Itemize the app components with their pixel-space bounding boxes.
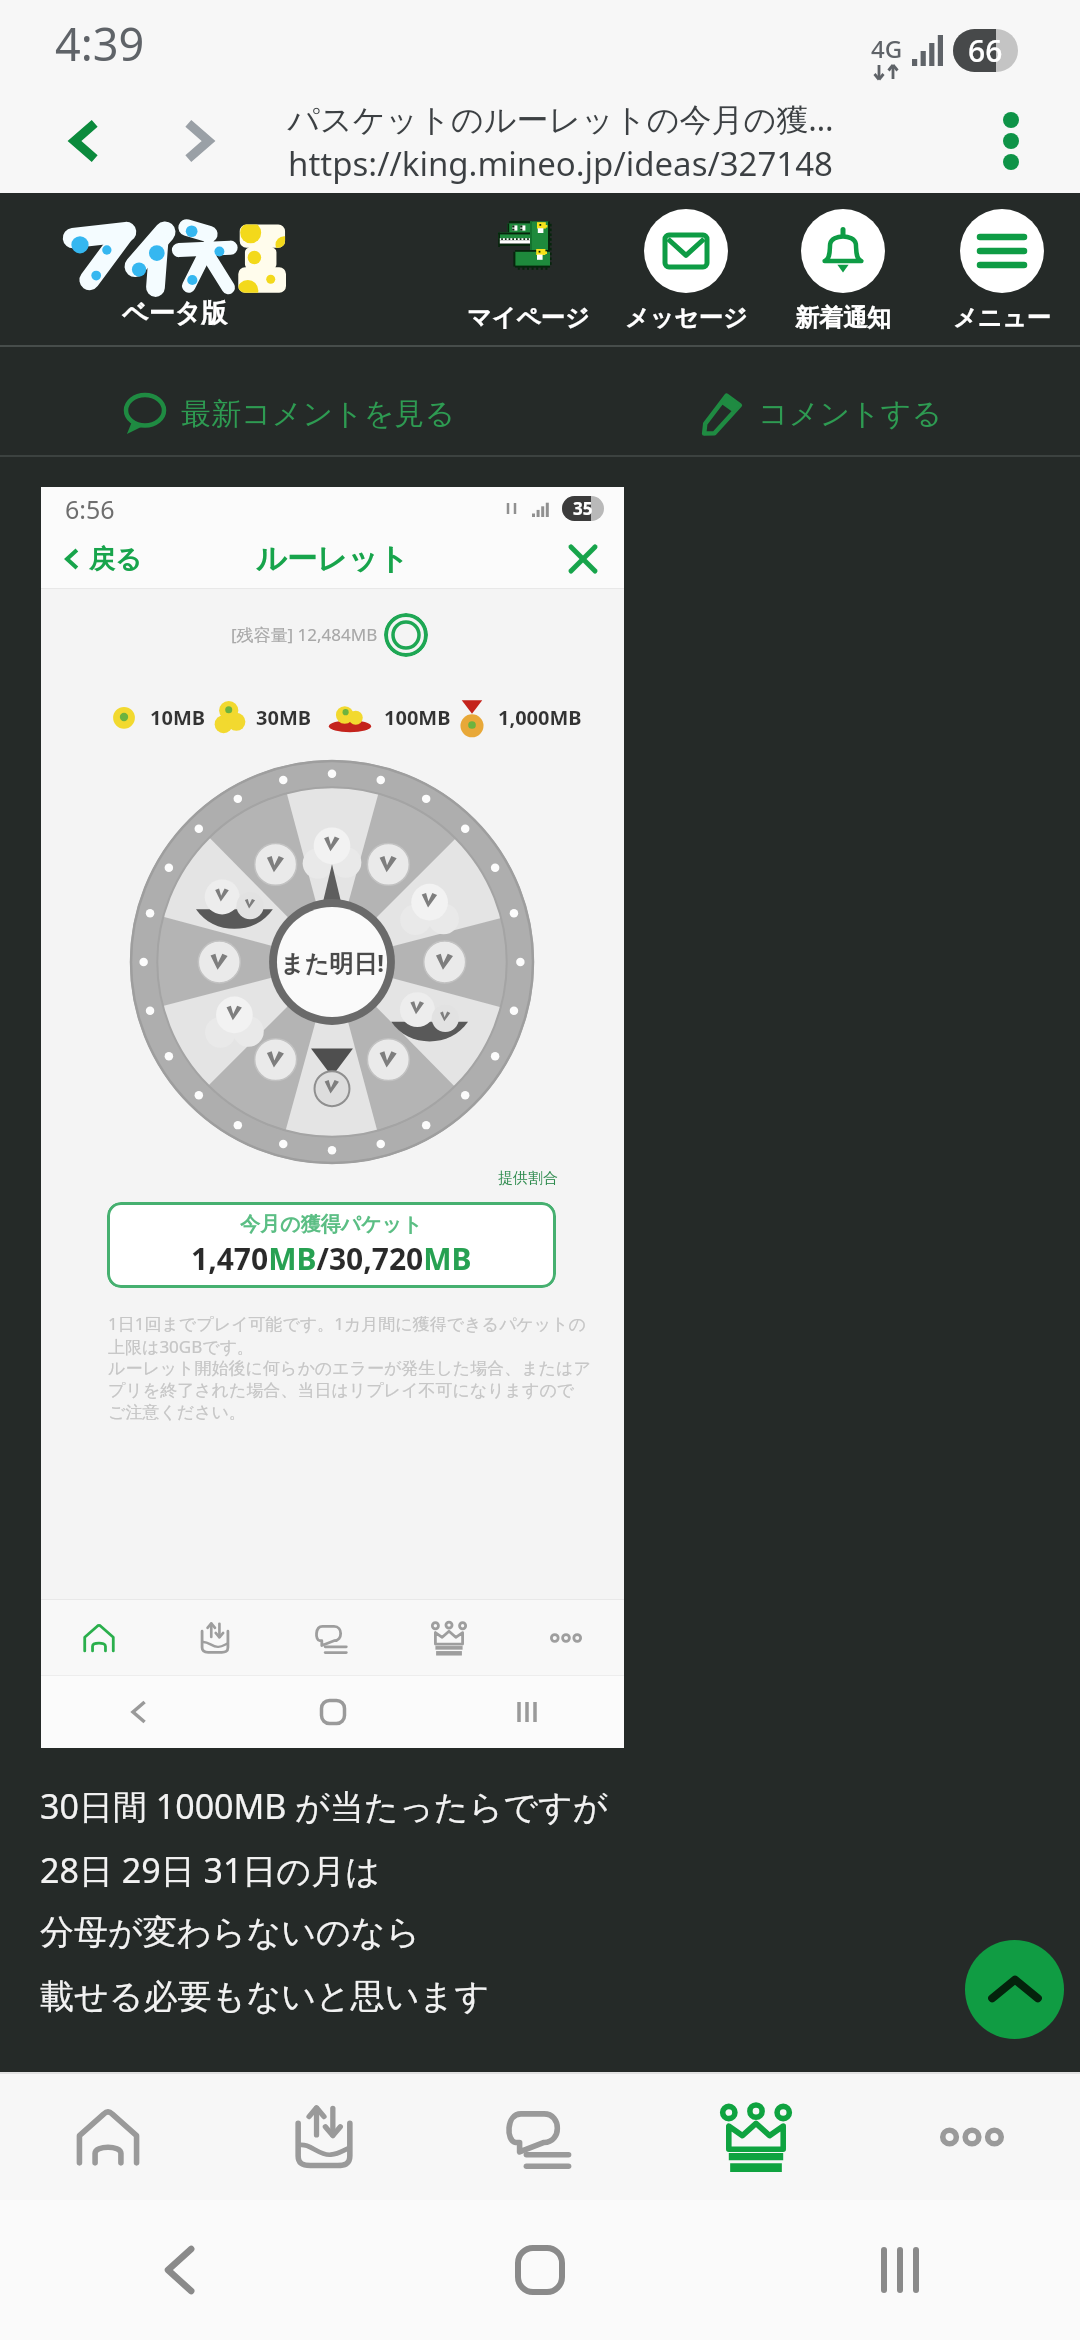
button[interactable]: Packets <box>216 2074 432 2200</box>
staticText: 1,470MB/30,720MB <box>191 1238 472 1279</box>
button[interactable]: Home <box>360 2200 720 2340</box>
staticText: 10MB <box>150 704 206 731</box>
button[interactable]: コメントする <box>703 359 943 469</box>
button[interactable]: More options <box>968 98 1054 184</box>
staticText: 新着通知 <box>795 303 891 333</box>
staticText: コメントする <box>758 395 943 433</box>
staticText: メニュー <box>953 303 1051 333</box>
button[interactable]: King <box>648 2074 864 2200</box>
button[interactable]: メニュー <box>927 209 1077 333</box>
staticText: 戻る <box>89 543 142 576</box>
staticText: 6:56 <box>65 492 115 526</box>
button[interactable]: Chat <box>273 1600 390 1675</box>
staticText: 28日 29日 31日の月は <box>40 1847 380 1911</box>
button[interactable]: Chat <box>432 2074 648 2200</box>
staticText: https://king.mineo.jp/ideas/327148 <box>288 141 833 186</box>
staticText: ルーレット <box>256 540 409 578</box>
staticText: 30日間 1000MB が当たったらですが <box>40 1783 608 1847</box>
staticText: また明日! <box>280 946 384 979</box>
button[interactable]: 最新コメントを見る <box>124 359 456 469</box>
staticText: 100MB <box>384 704 451 731</box>
button[interactable]: Forward <box>155 98 241 184</box>
staticText: 載せる必要もないと思います <box>40 1975 490 2039</box>
button[interactable]: King <box>390 1600 507 1675</box>
button[interactable]: Scroll to top <box>965 1940 1064 2039</box>
staticText: 66 <box>968 30 1003 71</box>
staticText: 4:39 <box>55 13 145 74</box>
button[interactable]: Home <box>0 2074 216 2200</box>
button[interactable]: メッセージ <box>611 209 761 333</box>
staticText: 1,000MB <box>498 704 582 731</box>
staticText: 今月の獲得パケット <box>240 1212 423 1237</box>
button[interactable]: Back <box>0 2200 360 2340</box>
staticText: ベータ版 <box>122 297 228 330</box>
staticText: 30MB <box>256 704 312 731</box>
staticText: 35 <box>573 497 593 520</box>
button[interactable]: Close <box>556 532 610 586</box>
staticText: 提供割合 <box>498 1169 558 1188</box>
staticText: 分母が変わらないのなら <box>40 1911 421 1975</box>
button[interactable]: Home <box>41 1600 157 1675</box>
button[interactable]: Back <box>42 98 128 184</box>
staticText: パスケットのルーレットの今月の獲… <box>287 97 834 141</box>
button[interactable]: Packets <box>157 1600 273 1675</box>
staticText: 4G <box>871 32 903 65</box>
button[interactable]: More <box>507 1600 624 1675</box>
button[interactable]: Refresh <box>384 613 428 657</box>
button[interactable]: Recents <box>720 2200 1080 2340</box>
staticText: メッセージ <box>625 303 748 333</box>
staticText: マイページ <box>467 303 590 333</box>
button[interactable]: 戻る <box>41 530 156 588</box>
button[interactable]: 新着通知 <box>768 209 918 333</box>
staticText: [残容量] 12,484MB <box>231 623 378 646</box>
staticText: 1日1回までプレイ可能です。1カ月間に獲得できるパケットの 上限は30GBです。… <box>108 1312 608 1423</box>
button[interactable]: マイページ <box>453 209 603 333</box>
staticText: 最新コメントを見る <box>181 395 456 433</box>
button[interactable]: More <box>864 2074 1080 2200</box>
